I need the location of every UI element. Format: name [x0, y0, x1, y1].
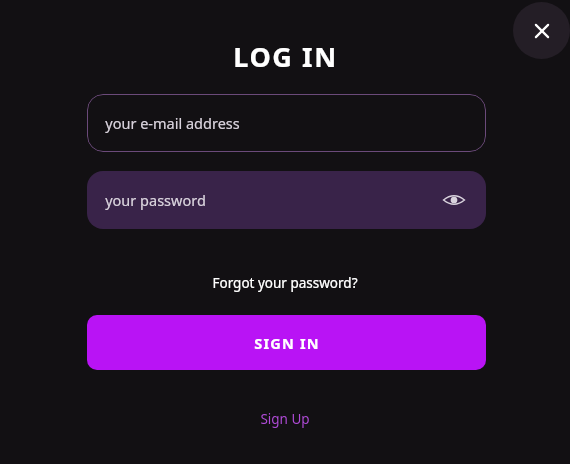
staticText: your e-mail address	[105, 113, 240, 133]
staticText: Forgot your password?	[212, 274, 358, 292]
staticText: LOG IN	[233, 38, 338, 75]
button[interactable]: Forgot your password?	[206, 271, 364, 295]
staticText: SIGN IN	[254, 333, 320, 353]
button[interactable]: Close	[513, 2, 570, 59]
button[interactable]: Sign Up	[252, 407, 318, 431]
button[interactable]: your password	[87, 171, 486, 229]
button[interactable]: Show password	[438, 184, 470, 216]
staticText: your password	[105, 190, 206, 210]
button[interactable]: SIGN IN	[87, 315, 486, 370]
button[interactable]: your e-mail address	[87, 94, 486, 152]
staticText: Sign Up	[260, 410, 310, 428]
